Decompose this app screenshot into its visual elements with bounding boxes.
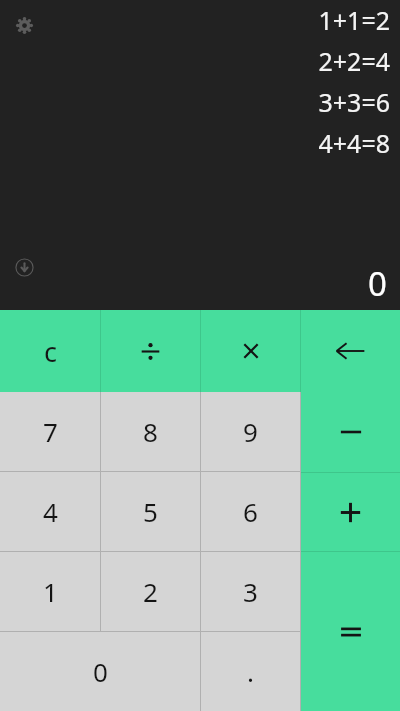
staticText: c (44, 333, 57, 370)
staticText: 4 (43, 494, 58, 529)
button[interactable]: Minus (301, 392, 400, 472)
staticText: 4+4=8 (318, 126, 390, 160)
staticText: 2+2=4 (318, 44, 390, 78)
button[interactable]: 0 (0, 632, 200, 711)
button[interactable]: Multiply (201, 310, 300, 392)
button[interactable]: . (201, 632, 300, 711)
staticText: 9 (243, 414, 258, 449)
staticText: 8 (143, 414, 158, 449)
button[interactable]: 2 (101, 552, 200, 631)
staticText: 1 (43, 574, 58, 609)
button[interactable]: Settings (10, 11, 38, 39)
button[interactable]: c (0, 310, 100, 392)
button[interactable]: 5 (101, 472, 200, 551)
button[interactable]: Plus (301, 473, 400, 551)
staticText: 0 (368, 261, 387, 306)
staticText: 2 (143, 574, 158, 609)
staticText: 5 (143, 494, 158, 529)
staticText: 6 (243, 494, 258, 529)
button[interactable]: Show history (10, 253, 38, 281)
button[interactable]: 6 (201, 472, 300, 551)
staticText: 7 (43, 414, 58, 449)
staticText: 1+1=2 (318, 3, 390, 37)
button[interactable]: 4 (0, 472, 100, 551)
staticText: 3 (243, 574, 258, 609)
staticText: 0 (93, 654, 108, 689)
button[interactable]: 9 (201, 392, 300, 471)
button[interactable]: 3 (201, 552, 300, 631)
button[interactable]: Divide (101, 310, 200, 392)
button[interactable]: Equals (301, 552, 400, 711)
staticText: . (247, 654, 254, 689)
staticText: 3+3=6 (318, 85, 390, 119)
button[interactable]: Backspace (301, 310, 400, 392)
button[interactable]: 7 (0, 392, 100, 471)
button[interactable]: 8 (101, 392, 200, 471)
button[interactable]: 1 (0, 552, 100, 631)
